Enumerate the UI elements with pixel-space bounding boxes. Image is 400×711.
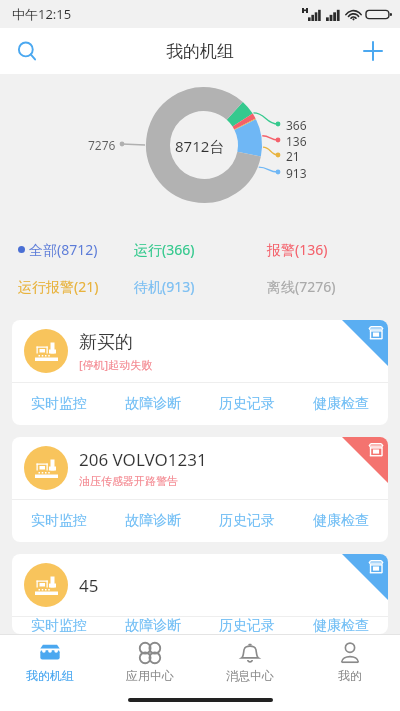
- staticText: 健康检查: [313, 617, 369, 634]
- button[interactable]: 我的机组: [0, 635, 100, 689]
- button[interactable]: 健康检查: [294, 500, 388, 542]
- button[interactable]: 实时监控: [12, 500, 106, 542]
- staticText: 我的机组: [26, 668, 74, 683]
- staticText: 8712台: [175, 136, 225, 156]
- staticText: 健康检查: [313, 512, 369, 530]
- staticText: 待机(913): [134, 277, 195, 296]
- staticText: 366: [286, 117, 307, 133]
- button[interactable]: 新买的: [12, 320, 388, 425]
- button[interactable]: 实时监控: [12, 383, 106, 425]
- staticText: 实时监控: [31, 395, 87, 413]
- staticText: 运行报警(21): [18, 277, 99, 296]
- button[interactable]: 运行(366): [134, 240, 267, 259]
- staticText: 913: [286, 165, 307, 181]
- button[interactable]: 待机(913): [134, 277, 267, 296]
- button[interactable]: Add: [354, 32, 392, 70]
- staticText: 全部(8712): [29, 240, 98, 259]
- button[interactable]: 45: [12, 554, 388, 634]
- staticText: 运行(366): [134, 240, 195, 259]
- button[interactable]: 健康检查: [294, 617, 388, 634]
- button[interactable]: 故障诊断: [106, 383, 200, 425]
- staticText: 应用中心: [126, 668, 174, 683]
- staticText: 故障诊断: [125, 512, 181, 530]
- staticText: 健康检查: [313, 395, 369, 413]
- staticText: 新买的: [79, 331, 133, 354]
- button[interactable]: 故障诊断: [106, 500, 200, 542]
- staticText: 报警(136): [267, 240, 328, 259]
- staticText: 历史记录: [219, 512, 275, 530]
- button[interactable]: 消息中心: [200, 635, 300, 689]
- button[interactable]: 历史记录: [200, 383, 294, 425]
- staticText: 45: [79, 574, 99, 597]
- button[interactable]: 运行报警(21): [18, 277, 134, 296]
- staticText: 故障诊断: [125, 395, 181, 413]
- button[interactable]: 应用中心: [100, 635, 200, 689]
- staticText: 实时监控: [31, 617, 87, 634]
- staticText: 离线(7276): [267, 277, 336, 296]
- staticText: 实时监控: [31, 512, 87, 530]
- staticText: 消息中心: [226, 668, 274, 683]
- staticText: [停机]起动失败: [79, 357, 153, 372]
- button[interactable]: 历史记录: [200, 617, 294, 634]
- staticText: 故障诊断: [125, 617, 181, 634]
- button[interactable]: Search: [8, 32, 46, 70]
- button[interactable]: 健康检查: [294, 383, 388, 425]
- button[interactable]: 故障诊断: [106, 617, 200, 634]
- staticText: 136: [286, 133, 307, 149]
- button[interactable]: 我的: [300, 635, 400, 689]
- staticText: 206 VOLVO1231: [79, 448, 207, 471]
- staticText: 油压传感器开路警告: [79, 474, 178, 488]
- staticText: 中午12:15: [12, 5, 72, 23]
- button[interactable]: 报警(136): [267, 240, 400, 259]
- staticText: 历史记录: [219, 395, 275, 413]
- staticText: 21: [286, 148, 300, 164]
- button[interactable]: 全部(8712): [18, 240, 134, 259]
- button[interactable]: 离线(7276): [267, 277, 400, 296]
- staticText: 我的机组: [166, 41, 234, 62]
- button[interactable]: 206 VOLVO1231: [12, 437, 388, 542]
- button[interactable]: 历史记录: [200, 500, 294, 542]
- staticText: 历史记录: [219, 617, 275, 634]
- button[interactable]: 实时监控: [12, 617, 106, 634]
- staticText: 7276: [88, 137, 116, 153]
- staticText: 我的: [338, 668, 362, 683]
